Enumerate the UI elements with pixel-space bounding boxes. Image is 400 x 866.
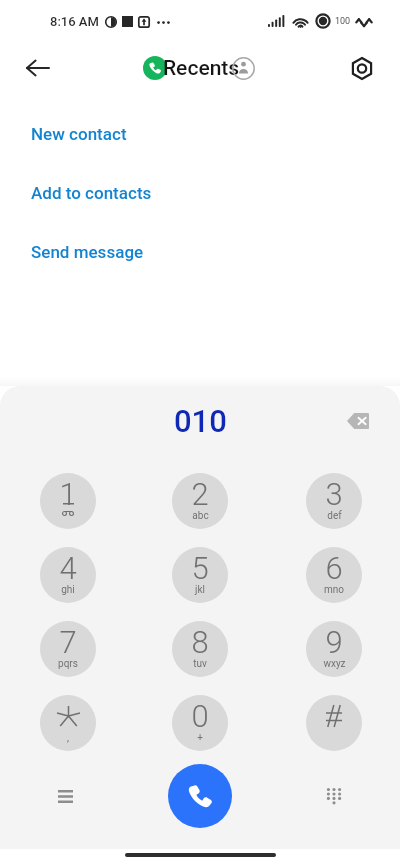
button[interactable]: 0 <box>172 695 228 751</box>
button[interactable]: 9 <box>306 621 362 677</box>
staticText: 4 <box>59 550 77 586</box>
staticText: tuv <box>193 658 207 670</box>
staticText: , <box>67 732 69 744</box>
button[interactable]: Call log <box>45 776 85 816</box>
button[interactable]: 8 <box>172 621 228 677</box>
staticText: New contact <box>31 124 127 144</box>
staticText: 3 <box>325 476 343 512</box>
button[interactable]: Settings <box>340 46 384 90</box>
staticText: ghi <box>61 584 75 596</box>
staticText: 5 <box>191 550 209 586</box>
staticText: Add to contacts <box>31 183 152 203</box>
button[interactable]: , <box>40 695 96 751</box>
staticText: 100 <box>335 16 351 27</box>
button[interactable]: Call <box>168 764 232 828</box>
staticText: mno <box>324 584 344 596</box>
staticText: 2 <box>191 476 209 512</box>
staticText: 8 <box>191 624 209 660</box>
staticText: abc <box>192 510 209 522</box>
staticText: def <box>327 510 342 522</box>
staticText: + <box>197 732 203 744</box>
button[interactable]: Dialpad <box>314 776 354 816</box>
staticText: Send message <box>31 242 144 262</box>
button[interactable]: 3 <box>306 473 362 529</box>
staticText: 010 <box>174 403 227 439</box>
staticText: Recents <box>163 56 240 81</box>
staticText: jkl <box>195 584 205 596</box>
button[interactable]: 7 <box>40 621 96 677</box>
button[interactable]: 4 <box>40 547 96 603</box>
staticText: 0 <box>191 698 209 734</box>
staticText: 7 <box>59 624 77 660</box>
button[interactable]: Backspace <box>340 403 376 439</box>
button[interactable]: 5 <box>172 547 228 603</box>
button[interactable]: Add to contacts <box>0 163 400 222</box>
staticText: 9 <box>325 624 343 660</box>
button[interactable]: Send message <box>0 222 400 281</box>
staticText: wxyz <box>323 658 346 670</box>
button[interactable]: 2 <box>172 473 228 529</box>
button[interactable] <box>306 695 362 751</box>
button[interactable]: New contact <box>0 104 400 163</box>
button[interactable]: Back <box>16 46 60 90</box>
button[interactable]: 1 <box>40 473 96 529</box>
staticText: 8:16 AM <box>50 14 99 29</box>
staticText: 6 <box>325 550 343 586</box>
staticText: 1 <box>59 476 77 512</box>
button[interactable]: 6 <box>306 547 362 603</box>
staticText: pqrs <box>58 658 78 670</box>
